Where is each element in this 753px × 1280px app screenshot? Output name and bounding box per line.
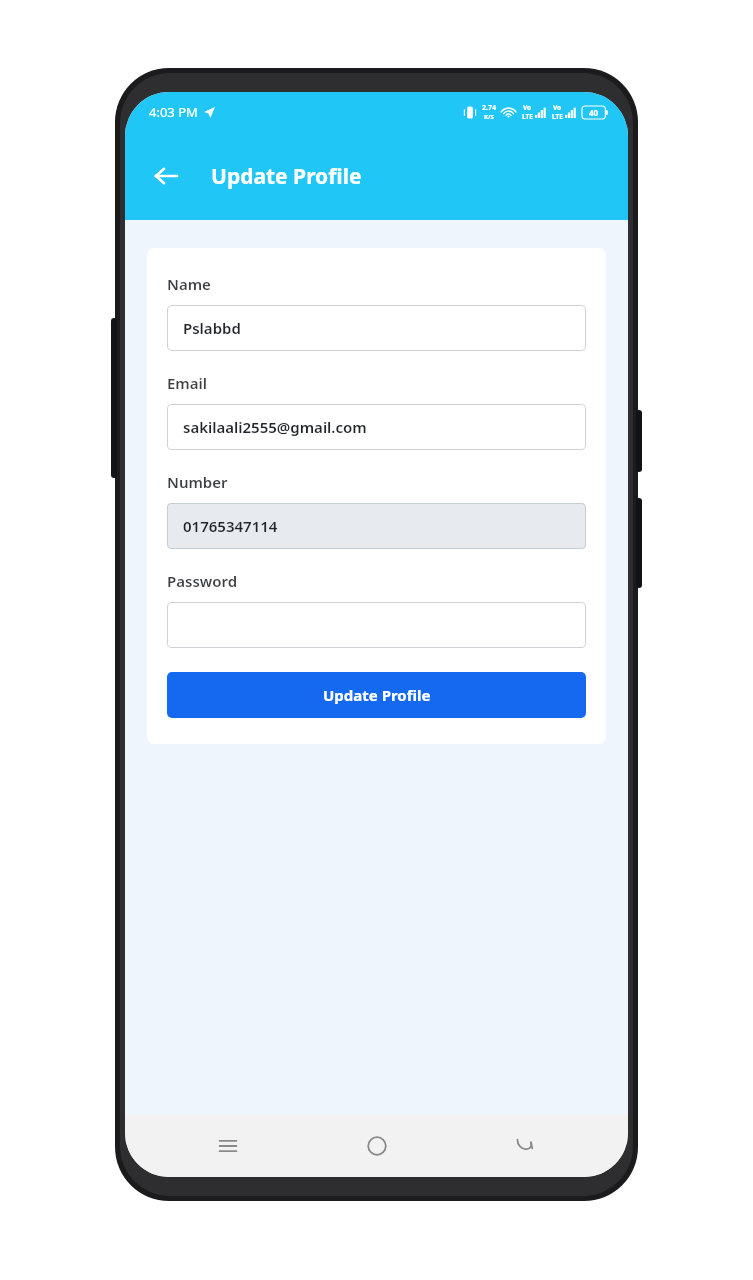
staticText: Password: [167, 571, 238, 591]
button[interactable]: Recent apps: [183, 1122, 273, 1170]
staticText: Vo: [553, 103, 562, 112]
button[interactable]: sakilaali2555@gmail.com: [167, 404, 586, 450]
staticText: Number: [167, 472, 228, 492]
staticText: sakilaali2555@gmail.com: [183, 417, 367, 437]
button[interactable]: Update Profile: [167, 672, 586, 718]
staticText: 2.74: [482, 103, 496, 113]
button[interactable]: 01765347114: [167, 503, 586, 549]
button[interactable]: Back: [480, 1122, 570, 1170]
staticText: Update Profile: [211, 162, 362, 191]
staticText: 01765347114: [183, 516, 278, 536]
staticText: Vo: [523, 103, 532, 112]
button[interactable]: Home: [332, 1122, 422, 1170]
staticText: 4:03 PM: [149, 103, 198, 121]
staticText: LTE: [552, 112, 563, 121]
staticText: Pslabbd: [183, 318, 241, 338]
staticText: K/S: [484, 113, 494, 121]
staticText: LTE: [522, 112, 533, 121]
button[interactable]: [167, 602, 586, 648]
staticText: Email: [167, 373, 208, 393]
button[interactable]: Pslabbd: [167, 305, 586, 351]
staticText: 40: [589, 107, 599, 118]
staticText: Name: [167, 274, 211, 294]
button[interactable]: Back: [145, 155, 187, 197]
staticText: Update Profile: [323, 685, 431, 705]
